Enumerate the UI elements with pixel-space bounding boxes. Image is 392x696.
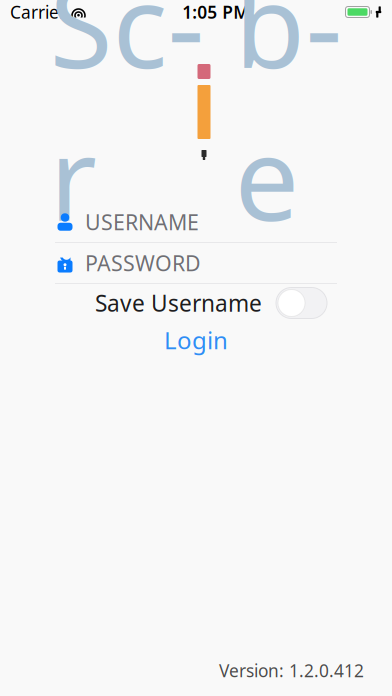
- staticText: Login: [164, 324, 228, 356]
- staticText: be: [234, 0, 342, 252]
- staticText: Scr: [49, 0, 204, 252]
- button[interactable]: Save Username: [55, 284, 337, 322]
- staticText: USERNAME: [85, 208, 199, 236]
- staticText: PASSWORD: [85, 249, 201, 277]
- staticText: Carrier: [10, 0, 66, 23]
- staticText: Version: 1.2.0.412: [219, 659, 364, 682]
- staticText: Save Username: [95, 288, 262, 318]
- staticText: [204, 24, 234, 176]
- staticText: 1:05 PM: [182, 0, 249, 23]
- button[interactable]: Login: [55, 324, 337, 356]
